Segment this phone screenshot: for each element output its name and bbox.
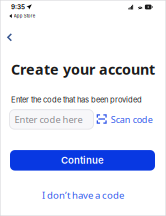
staticText: Scan code <box>111 113 153 125</box>
staticText: I don’t have a code <box>42 189 124 202</box>
staticText: Continue <box>61 154 104 166</box>
staticText: Enter the code that has been provided <box>11 95 142 104</box>
button[interactable]: Enter code here <box>9 110 93 129</box>
staticText: 9:35 <box>11 3 25 11</box>
staticText: Enter code here <box>14 113 82 126</box>
button[interactable]: Back <box>0 27 21 48</box>
button[interactable]: I don’t have a code <box>36 184 130 207</box>
button[interactable]: Scan code <box>93 109 158 129</box>
button[interactable]: Continue <box>10 150 155 171</box>
staticText: Create your account <box>11 60 155 79</box>
staticText: App Store <box>14 13 35 19</box>
